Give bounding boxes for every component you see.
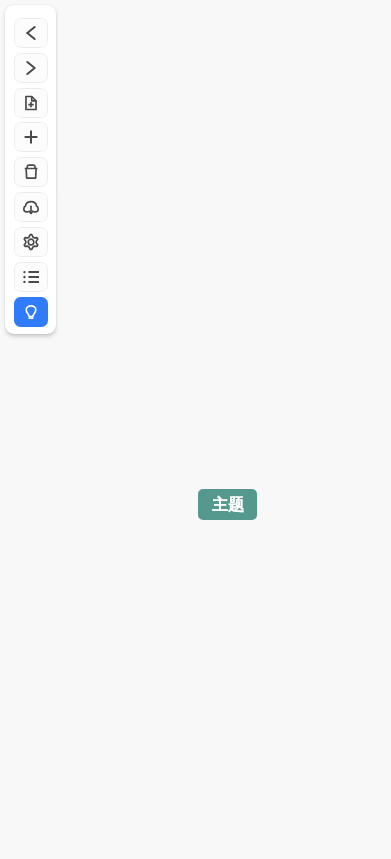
staticText: 主题 <box>212 495 244 515</box>
button[interactable]: Forward <box>14 53 48 83</box>
button[interactable]: Tips <box>14 297 48 327</box>
button[interactable]: Download <box>14 192 48 222</box>
button[interactable]: 主题 <box>198 489 257 520</box>
button[interactable]: Delete <box>14 157 48 187</box>
button[interactable]: Add <box>14 122 48 152</box>
button[interactable]: List <box>14 262 48 292</box>
button[interactable]: Settings <box>14 227 48 257</box>
button[interactable]: New file <box>14 88 48 118</box>
button[interactable]: Back <box>14 18 48 48</box>
